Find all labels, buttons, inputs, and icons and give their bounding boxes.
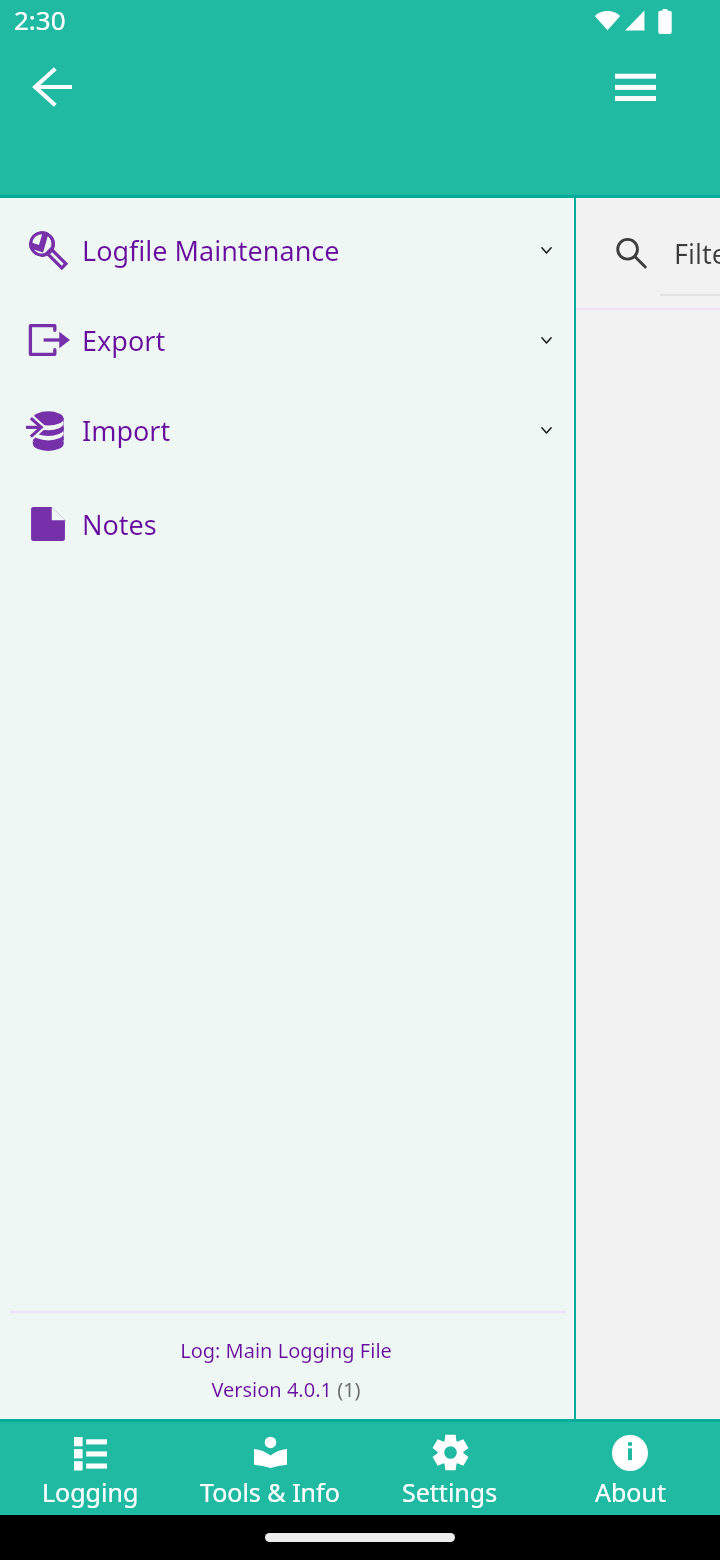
button[interactable]: Logfile Maintenance bbox=[0, 205, 572, 295]
button[interactable]: Open navigation menu bbox=[592, 43, 679, 130]
button[interactable]: Settings bbox=[360, 1419, 540, 1515]
staticText: Log: Main Logging File bbox=[0, 1337, 572, 1364]
staticText: 2:30 bbox=[14, 2, 66, 37]
staticText: Notes bbox=[82, 506, 157, 543]
button[interactable]: About bbox=[540, 1419, 720, 1515]
staticText: Export bbox=[82, 322, 166, 359]
staticText: Import bbox=[82, 412, 171, 449]
button[interactable]: Tools & Info bbox=[180, 1419, 360, 1515]
staticText: Tools & Info bbox=[200, 1475, 340, 1509]
button[interactable]: Notes bbox=[0, 479, 572, 569]
staticText: About bbox=[595, 1475, 666, 1509]
button[interactable]: Export bbox=[0, 295, 572, 385]
button[interactable]: Import bbox=[0, 385, 572, 475]
button[interactable]: Navigate up bbox=[9, 43, 96, 130]
staticText: Settings bbox=[402, 1475, 498, 1509]
button[interactable]: Logging bbox=[0, 1419, 180, 1515]
staticText: Filter bbox=[674, 235, 720, 272]
staticText: Version 4.0.1 (1) bbox=[0, 1376, 572, 1403]
staticText: Logfile Maintenance bbox=[82, 232, 340, 269]
staticText: Logging bbox=[42, 1475, 139, 1509]
